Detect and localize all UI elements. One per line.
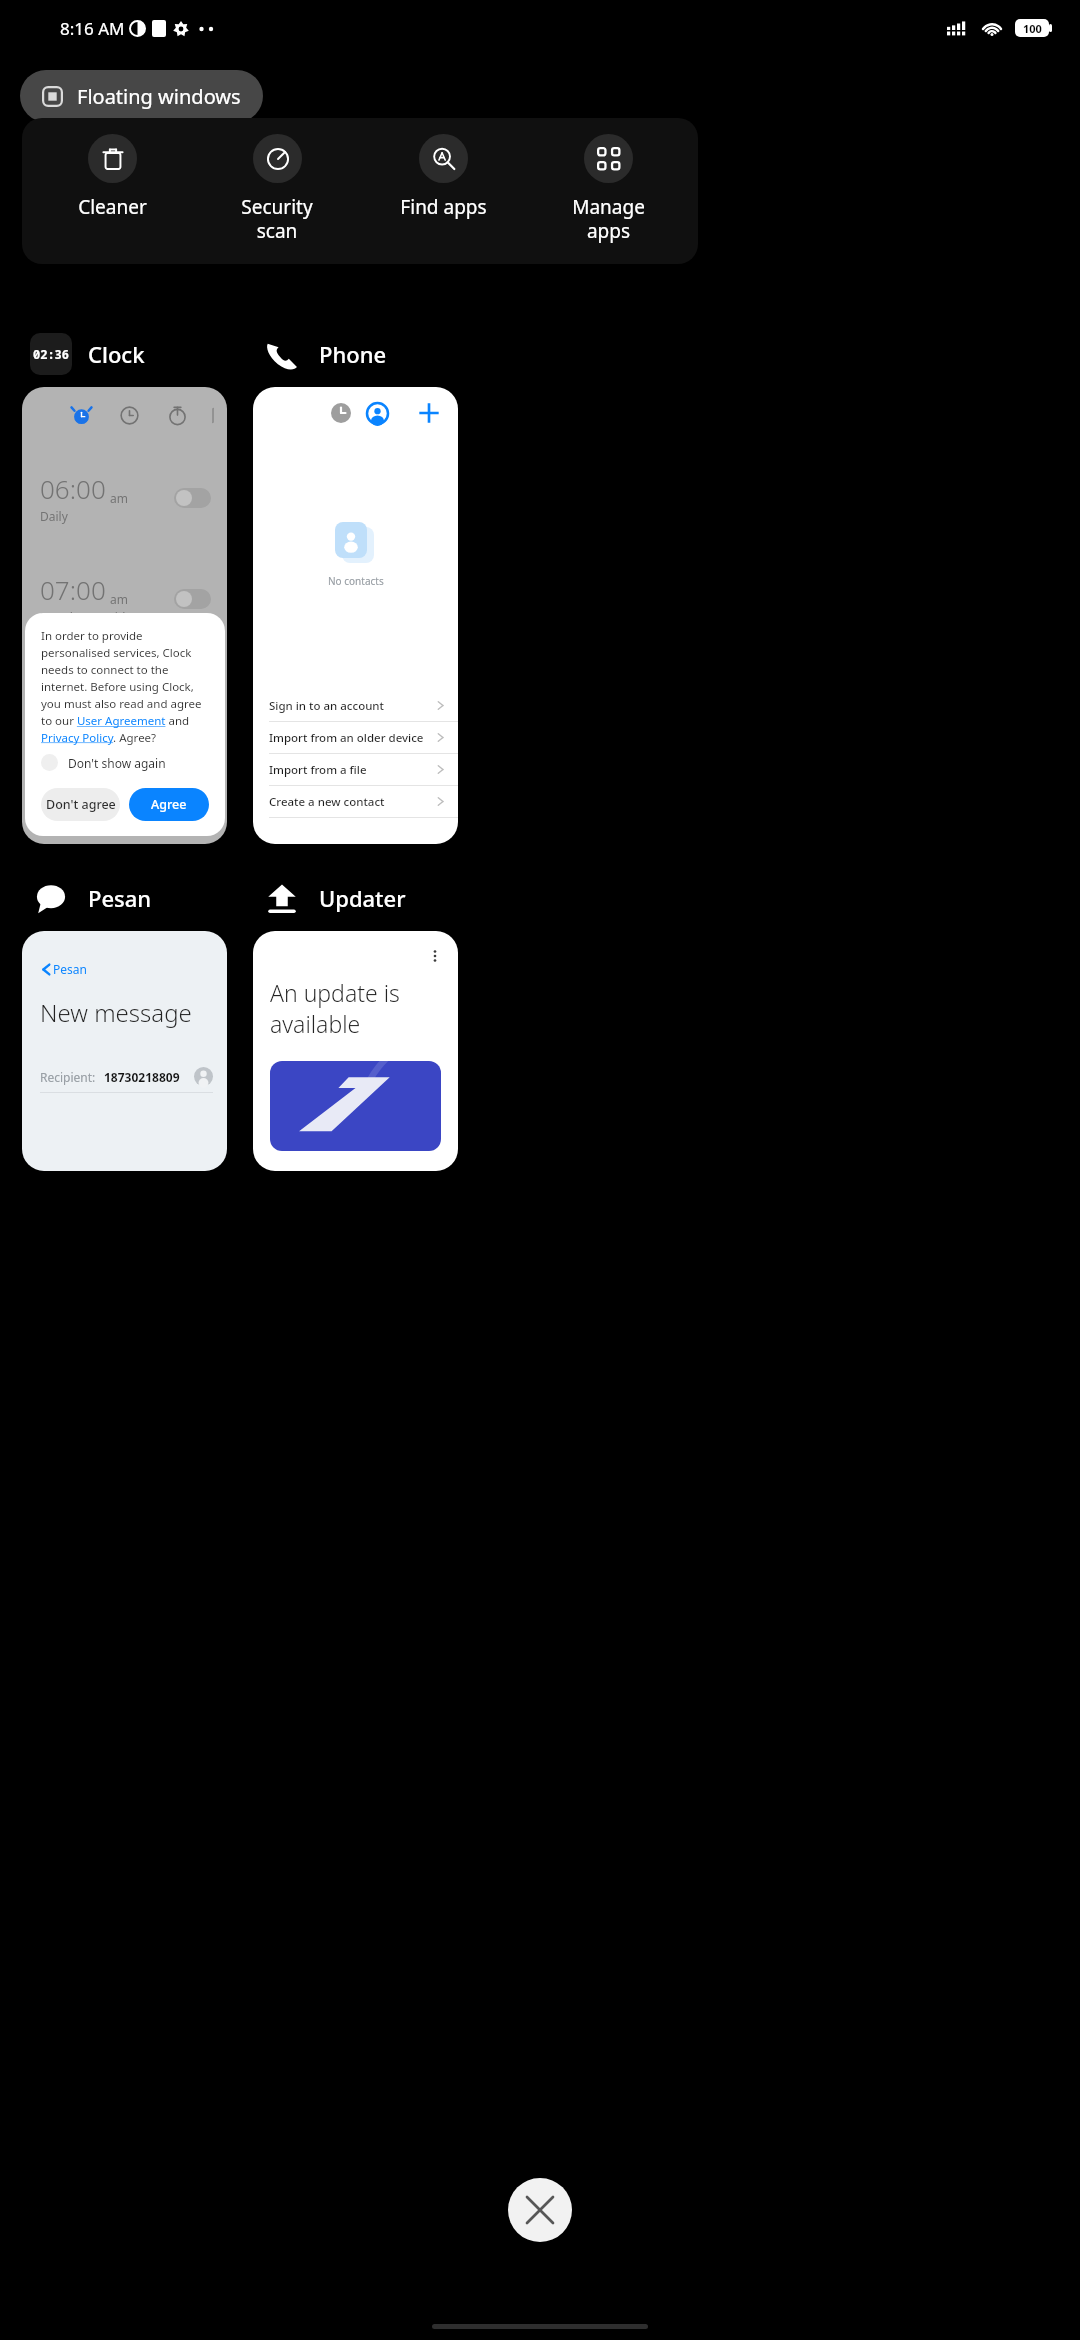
- button[interactable]: Import from an older device: [253, 722, 458, 754]
- button[interactable]: 02:36: [22, 325, 145, 383]
- button[interactable]: Close all: [508, 2178, 572, 2242]
- button[interactable]: Agree: [129, 788, 209, 821]
- staticText: Daily: [40, 508, 68, 524]
- button[interactable]: Pesan: [22, 931, 227, 1171]
- staticText: 8:16 AM: [60, 17, 125, 40]
- staticText: In order to provide personalised service…: [41, 628, 209, 745]
- staticText: am: [110, 591, 128, 607]
- staticText: Don't show again: [68, 755, 166, 771]
- button[interactable]: An update is available: [253, 931, 458, 1171]
- button[interactable]: Floating windows: [20, 70, 263, 122]
- button[interactable]: Pesan: [22, 869, 152, 927]
- button[interactable]: Phone: [253, 325, 387, 383]
- staticText: No contacts: [328, 574, 384, 588]
- staticText: New message: [40, 996, 192, 1029]
- staticText: Import from an older device: [269, 730, 424, 746]
- button[interactable]: Cleaner: [37, 134, 187, 220]
- staticText: Phone: [319, 339, 387, 369]
- button[interactable]: Don't show again: [41, 754, 166, 771]
- staticText: Manage apps: [572, 194, 645, 243]
- button[interactable]: Security scan: [202, 134, 352, 243]
- staticText: Sign in to an account: [269, 698, 384, 714]
- button[interactable]: [174, 690, 211, 710]
- staticText: am: [110, 692, 128, 708]
- button[interactable]: Manage apps: [533, 134, 683, 243]
- staticText: Security scan: [241, 194, 313, 243]
- staticText: 18730218809: [104, 1069, 180, 1085]
- staticText: 08:00: [40, 673, 106, 708]
- staticText: Import from a file: [269, 762, 367, 778]
- button[interactable]: Pesan: [40, 961, 87, 977]
- button[interactable]: Don't agree: [41, 788, 120, 821]
- button[interactable]: [174, 488, 211, 508]
- staticText: Sat Sun: [40, 710, 83, 726]
- staticText: 02:36: [33, 346, 70, 362]
- staticText: 100: [1023, 21, 1042, 36]
- staticText: Find apps: [400, 194, 487, 220]
- button[interactable]: [174, 589, 211, 609]
- staticText: Pesan: [53, 961, 87, 977]
- staticText: Cleaner: [78, 194, 147, 220]
- staticText: 07:00: [40, 572, 106, 607]
- button[interactable]: Updater: [253, 869, 406, 927]
- staticText: An update is available: [270, 977, 458, 1039]
- staticText: Recipient:: [40, 1069, 96, 1085]
- staticText: Pesan: [88, 883, 152, 913]
- button[interactable]: Sign in to an account: [253, 690, 458, 722]
- staticText: Create a new contact: [269, 794, 385, 810]
- button[interactable]: 06:00: [22, 387, 227, 844]
- staticText: 06:00: [40, 471, 106, 506]
- staticText: Agree: [151, 796, 187, 813]
- staticText: Clock: [88, 339, 145, 369]
- button[interactable]: No contacts: [253, 387, 458, 844]
- staticText: Monday to Friday: [40, 609, 139, 625]
- button[interactable]: Find apps: [368, 134, 518, 220]
- button[interactable]: Import from a file: [253, 754, 458, 786]
- staticText: Updater: [319, 883, 406, 913]
- staticText: Don't agree: [46, 796, 116, 813]
- staticText: am: [110, 490, 128, 506]
- staticText: Floating windows: [77, 83, 241, 110]
- button[interactable]: Create a new contact: [253, 786, 458, 818]
